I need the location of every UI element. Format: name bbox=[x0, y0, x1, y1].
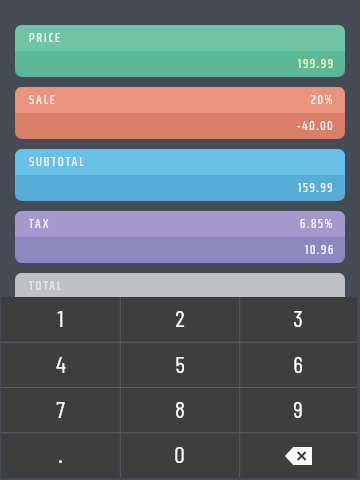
staticText: 4 bbox=[56, 349, 66, 377]
staticText: 9 bbox=[293, 394, 303, 422]
staticText: 6 bbox=[293, 349, 303, 377]
button[interactable]: 2 bbox=[120, 297, 239, 343]
staticText: 159.99 bbox=[298, 177, 335, 198]
staticText: 5 bbox=[175, 349, 185, 377]
staticText: TOTAL bbox=[29, 274, 64, 296]
staticText: 170.95 bbox=[299, 301, 335, 322]
staticText: 7 bbox=[56, 394, 65, 422]
button[interactable]: 9 bbox=[239, 388, 357, 433]
staticText: SALE bbox=[29, 88, 57, 110]
staticText: 1 bbox=[57, 303, 64, 331]
button[interactable]: SUBTOTAL bbox=[15, 149, 345, 201]
staticText: 6.85% bbox=[300, 213, 335, 234]
button[interactable]: 6 bbox=[239, 343, 357, 388]
button[interactable]: PRICE bbox=[15, 25, 345, 77]
button[interactable]: Backspace bbox=[239, 433, 357, 478]
button[interactable]: TAX bbox=[15, 211, 345, 263]
button[interactable]: 0 bbox=[120, 433, 239, 478]
button[interactable]: SALE bbox=[15, 87, 345, 139]
staticText: SUBTOTAL bbox=[29, 150, 86, 172]
staticText: . bbox=[58, 439, 63, 467]
button[interactable]: 5 bbox=[120, 343, 239, 388]
staticText: TAX bbox=[29, 212, 51, 234]
staticText: 20% bbox=[311, 89, 335, 110]
staticText: 3 bbox=[293, 303, 303, 331]
button[interactable]: 7 bbox=[1, 388, 120, 433]
button[interactable]: 3 bbox=[239, 297, 357, 343]
staticText: 10.96 bbox=[305, 239, 335, 260]
staticText: PRICE bbox=[29, 26, 62, 48]
staticText: 2 bbox=[175, 303, 185, 331]
button[interactable]: 1 bbox=[1, 297, 120, 343]
staticText: 199.99 bbox=[298, 53, 335, 74]
staticText: 0 bbox=[174, 439, 185, 467]
button[interactable]: TOTAL bbox=[15, 273, 345, 325]
staticText: -40.00 bbox=[297, 115, 335, 136]
other: Backspace bbox=[285, 447, 312, 465]
button[interactable]: 4 bbox=[1, 343, 120, 388]
button[interactable]: 8 bbox=[120, 388, 239, 433]
button[interactable]: . bbox=[1, 433, 120, 478]
staticText: 8 bbox=[175, 394, 185, 422]
